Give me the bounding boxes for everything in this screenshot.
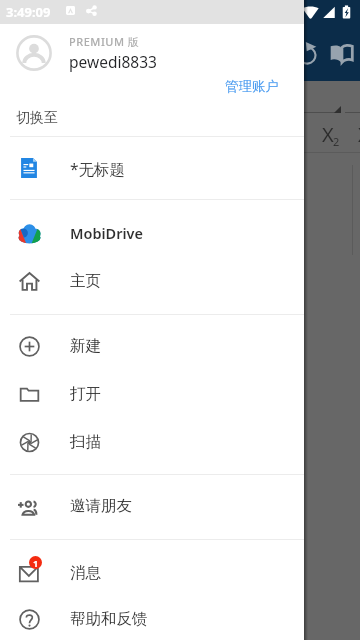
staticText: X (322, 121, 334, 148)
button[interactable]: Redo (288, 33, 328, 73)
staticText: 2 (333, 134, 340, 149)
staticText: 邀请朋友 (70, 496, 132, 516)
button[interactable]: 新建 (0, 322, 304, 370)
staticText: 新建 (70, 336, 101, 356)
staticText: 消息 (70, 563, 101, 583)
button[interactable]: MobiDrive (0, 209, 304, 257)
button[interactable]: 管理账户 (221, 76, 283, 97)
staticText: 3:49:09 (6, 3, 51, 21)
staticText: PREMIUM 版 (69, 34, 140, 49)
staticText: X (358, 121, 360, 148)
button[interactable]: 扫描 (0, 418, 304, 466)
staticText: 1 (33, 557, 39, 569)
staticText: pewedi8833 (69, 51, 157, 72)
button[interactable]: Close navigation drawer (304, 0, 360, 640)
staticText: 扫描 (70, 432, 101, 452)
button[interactable]: PREMIUM 版 (0, 24, 304, 82)
button[interactable]: 打开 (0, 370, 304, 418)
staticText: *无标题 (70, 158, 126, 179)
staticText: 打开 (70, 384, 101, 404)
staticText: MobiDrive (70, 223, 144, 243)
button[interactable]: 帮助和反馈 (0, 597, 304, 640)
button[interactable]: *无标题 (0, 144, 304, 192)
button[interactable]: 1 (0, 549, 304, 597)
staticText: 切换至 (16, 109, 58, 127)
button[interactable]: 主页 (0, 257, 304, 305)
button[interactable]: 邀请朋友 (0, 482, 304, 530)
staticText: 帮助和反馈 (70, 609, 148, 629)
staticText: 主页 (70, 271, 101, 291)
button[interactable]: Read mode (321, 33, 360, 73)
